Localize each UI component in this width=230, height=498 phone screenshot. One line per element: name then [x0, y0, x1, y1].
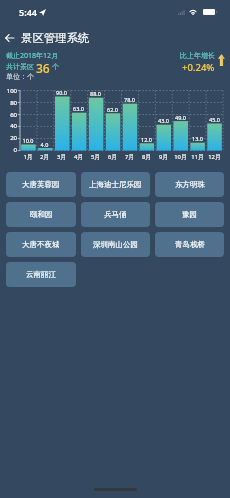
button[interactable]: 大唐芙蓉园 [6, 172, 76, 197]
staticText: 4月 [70, 153, 87, 161]
staticText: 上海迪士尼乐园 [89, 180, 142, 189]
staticText: 12.0 [138, 136, 155, 143]
staticText: 88.0 [87, 90, 104, 97]
staticText: 豫园 [182, 210, 197, 219]
button[interactable]: 青岛栈桥 [155, 232, 224, 257]
staticText: 13.0 [189, 135, 206, 142]
staticText: 7月 [121, 153, 138, 161]
staticText: 100 [0, 87, 17, 95]
staticText: 5月 [87, 153, 104, 161]
staticText: 4.0 [36, 141, 53, 148]
button[interactable]: 东方明珠 [155, 172, 224, 197]
button[interactable]: 兵马俑 [81, 202, 150, 227]
staticText: 45.0 [206, 116, 223, 123]
staticText: 东方明珠 [175, 180, 205, 189]
staticText: 景区管理系统 [21, 31, 90, 45]
staticText: 云南丽江 [26, 270, 56, 279]
button[interactable]: 云南丽江 [6, 262, 76, 287]
button[interactable]: 上海迪士尼乐园 [81, 172, 150, 197]
staticText: 43.0 [155, 117, 172, 124]
staticText: 20 [0, 134, 17, 142]
staticText: 9月 [155, 153, 172, 161]
staticText: 80 [0, 99, 17, 107]
staticText: 36 [36, 60, 50, 73]
button[interactable]: 颐和园 [6, 202, 76, 227]
staticText: 11月 [189, 153, 206, 161]
button[interactable]: 深圳南山公园 [81, 232, 150, 257]
staticText: 1月 [20, 153, 36, 161]
staticText: 6月 [104, 153, 121, 161]
staticText: 62.0 [104, 106, 121, 113]
staticText: 2月 [36, 153, 53, 161]
staticText: 青岛栈桥 [175, 240, 205, 249]
staticText: 大唐不夜城 [22, 240, 60, 249]
staticText: 63.0 [70, 105, 87, 112]
staticText: 颐和园 [30, 210, 53, 219]
staticText: 40 [0, 122, 17, 130]
staticText: 大唐芙蓉园 [22, 180, 60, 189]
staticText: 12月 [206, 153, 223, 161]
staticText: 单位：个 [6, 72, 34, 81]
staticText: 49.0 [172, 114, 189, 121]
button[interactable]: 豫园 [155, 202, 224, 227]
staticText: +0.24% [182, 61, 215, 74]
staticText: 90.0 [53, 89, 70, 96]
button[interactable]: Back [0, 29, 18, 47]
button[interactable]: 大唐不夜城 [6, 232, 76, 257]
staticText: 8月 [138, 153, 155, 161]
staticText: 5:44 [19, 6, 37, 18]
staticText: 10月 [172, 153, 189, 161]
staticText: 比上年增长 [180, 51, 215, 60]
staticText: 60 [0, 111, 17, 119]
staticText: 0 [0, 146, 17, 154]
staticText: 78.0 [121, 96, 138, 103]
staticText: 个 [52, 62, 59, 71]
staticText: 3月 [53, 153, 70, 161]
staticText: 共计景区 [6, 62, 34, 71]
staticText: 兵马俑 [104, 210, 127, 219]
staticText: 截止2018年12月 [6, 51, 59, 61]
staticText: 10.0 [20, 137, 36, 144]
staticText: 深圳南山公园 [93, 240, 138, 249]
